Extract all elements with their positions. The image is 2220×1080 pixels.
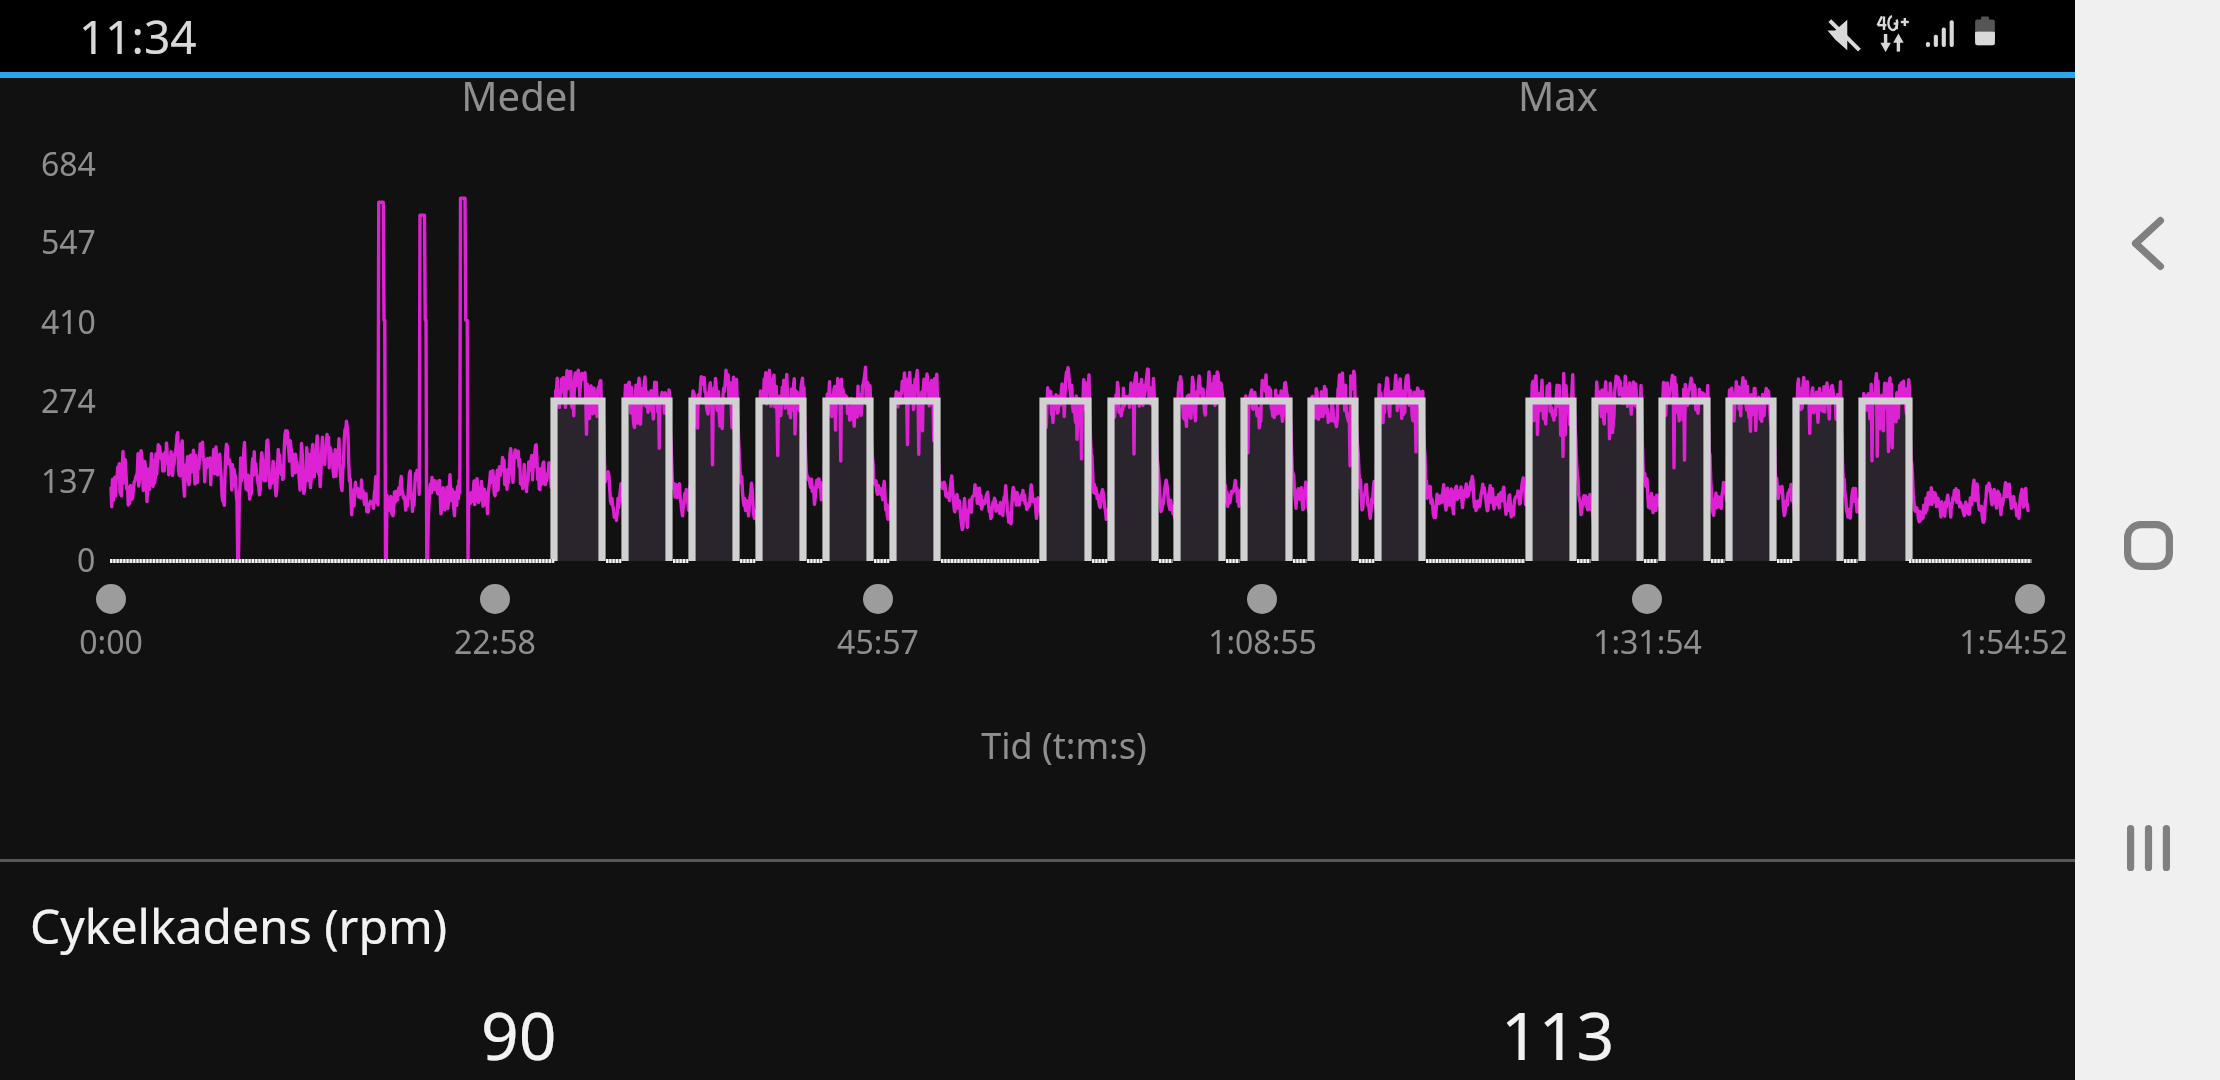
staticText: Medel [461,68,578,122]
button[interactable]: Home [2088,485,2208,605]
staticText: 90 [481,989,557,1079]
staticText: 1:08:55 [1208,620,1317,664]
staticText: 0:00 [79,620,143,664]
staticText: 113 [1501,989,1615,1079]
button[interactable]: Recents [2088,788,2208,908]
staticText: 410 [41,300,96,344]
staticText: 1:31:54 [1593,620,1702,664]
staticText: 0 [77,538,96,582]
staticText: Cykelkadens (rpm) [30,893,448,958]
staticText: 274 [41,379,96,423]
staticText: 684 [41,142,96,186]
staticText: 137 [41,459,96,503]
staticText: 1:54:52 [1959,620,2068,664]
staticText: 11:34 [79,5,197,68]
staticText: 22:58 [454,620,536,664]
staticText: 547 [41,220,96,264]
staticText: 45:57 [837,620,919,664]
staticText: Tid (t:m:s) [981,721,1147,770]
staticText: Max [1518,68,1598,122]
button[interactable]: Back [2088,183,2208,303]
